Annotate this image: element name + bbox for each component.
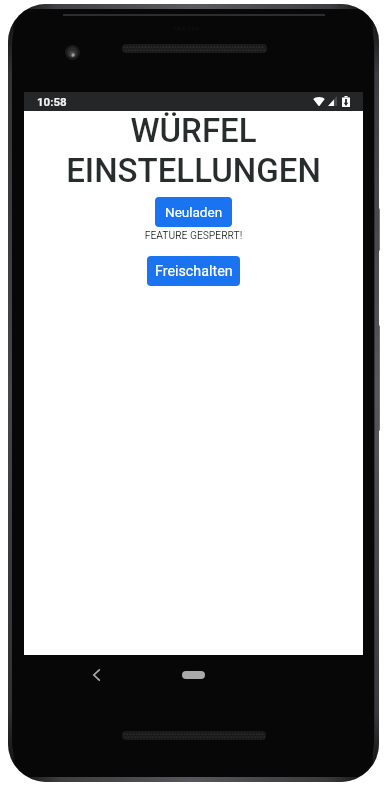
button[interactable]: Freischalten [147,256,240,286]
button[interactable]: Neuladen [155,197,232,227]
staticText: 10:58 [37,95,67,108]
staticText: Freischalten [155,263,233,280]
button[interactable]: Home [182,671,205,679]
staticText: Neuladen [165,204,223,220]
staticText: WÜRFEL EINSTELLUNGEN [24,111,363,190]
button[interactable]: Back [83,661,110,688]
staticText: FEATURE GESPERRT! [24,229,363,241]
